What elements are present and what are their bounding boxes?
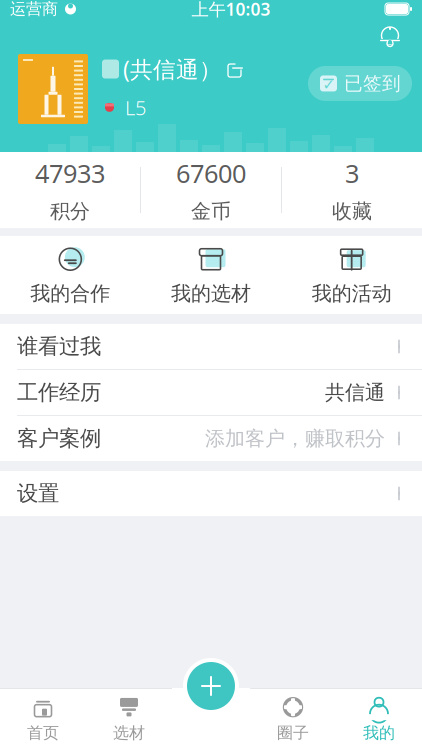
button[interactable]: 谁看过我: [0, 324, 422, 369]
staticText: 选材: [113, 723, 145, 743]
staticText: 我的活动: [312, 281, 392, 306]
staticText: 67600: [176, 156, 246, 190]
button[interactable]: 头像: [18, 54, 88, 124]
staticText: 3: [345, 156, 359, 190]
button[interactable]: 47933: [0, 152, 140, 228]
staticText: L5: [125, 94, 146, 121]
button[interactable]: 设置: [0, 471, 422, 516]
staticText: 谁看过我: [17, 333, 101, 360]
staticText: 积分: [50, 199, 90, 224]
staticText: 圈子: [277, 723, 309, 743]
staticText: 我的: [363, 723, 395, 743]
button[interactable]: 首页: [0, 688, 86, 750]
button[interactable]: 我的合作: [0, 236, 141, 314]
staticText: 设置: [17, 480, 59, 507]
button[interactable]: 我的: [336, 688, 422, 750]
staticText: 共信通: [325, 380, 385, 405]
staticText: 添加客户，赚取积分: [205, 426, 385, 451]
staticText: 客户案例: [17, 425, 101, 452]
button[interactable]: 客户案例: [0, 416, 422, 461]
staticText: 运营商: [10, 0, 58, 19]
staticText: 已签到: [344, 72, 401, 95]
button[interactable]: 工作经历: [0, 370, 422, 415]
staticText: 上午10:03: [191, 0, 270, 20]
button[interactable]: 圈子: [250, 688, 336, 750]
staticText: 工作经历: [17, 379, 101, 406]
button[interactable]: 我的选材: [141, 236, 281, 314]
staticText: 金币: [191, 199, 231, 224]
button[interactable]: 我的活动: [281, 236, 422, 314]
button[interactable]: 发布: [183, 658, 239, 714]
staticText: 收藏: [332, 199, 372, 224]
button[interactable]: 编辑昵称: [226, 59, 246, 79]
staticText: 首页: [27, 723, 59, 743]
staticText: 我的选材: [171, 281, 251, 306]
staticText: 我的合作: [30, 281, 110, 306]
staticText: 47933: [35, 156, 105, 190]
staticText: ✓: [322, 76, 334, 93]
button[interactable]: ✓: [308, 66, 412, 101]
button[interactable]: 67600: [141, 152, 281, 228]
button[interactable]: 通知: [370, 20, 410, 54]
staticText: (共信通）: [123, 54, 222, 84]
button[interactable]: 3: [282, 152, 422, 228]
button[interactable]: 选材: [86, 688, 172, 750]
